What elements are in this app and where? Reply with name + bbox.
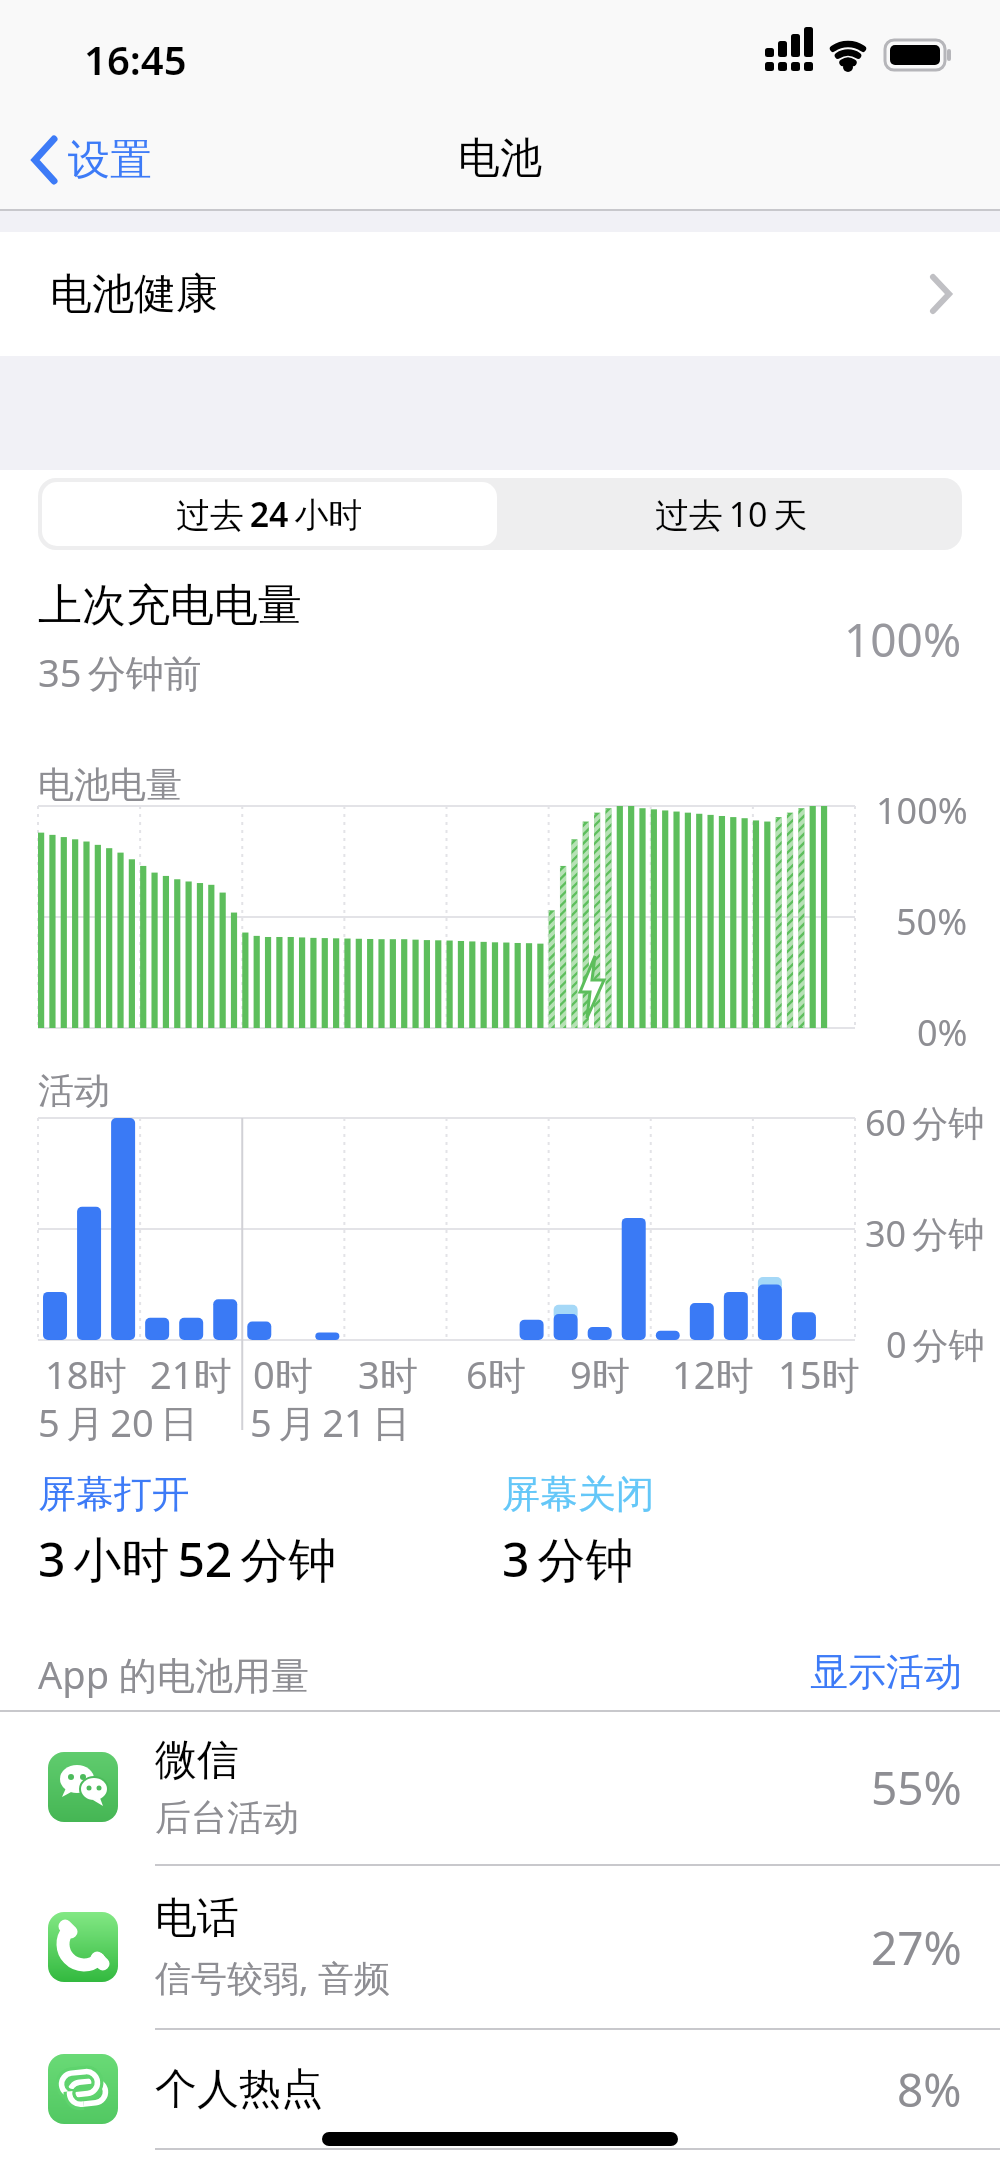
button[interactable]: 电池健康 xyxy=(0,232,1000,356)
staticText: 设置 xyxy=(68,134,152,187)
staticText: 100% xyxy=(844,608,962,671)
staticText: 35 分钟前 xyxy=(38,646,202,698)
staticText: 50% xyxy=(896,897,968,946)
staticText: 显示活动 xyxy=(810,1648,962,1696)
staticText: 信号较弱, 音频 xyxy=(155,1953,391,2002)
button[interactable]: 个人热点 xyxy=(0,2030,1000,2148)
staticText: 电池电量 xyxy=(38,762,182,807)
staticText: 电池健康 xyxy=(50,268,218,321)
button[interactable]: 电话 xyxy=(0,1866,1000,2028)
staticText: 过去 10 天 xyxy=(655,491,808,537)
staticText: 3时 xyxy=(358,1348,418,1400)
button[interactable]: 显示活动 xyxy=(810,1648,962,1696)
staticText: 3 小时 52 分钟 xyxy=(38,1526,337,1592)
staticText: 微信 xyxy=(155,1734,239,1787)
staticText: 5 月 21 日 xyxy=(250,1396,411,1448)
staticText: 0 分钟 xyxy=(886,1320,985,1369)
staticText: 12时 xyxy=(672,1348,754,1400)
staticText: 18时 xyxy=(45,1348,127,1400)
staticText: 电话 xyxy=(155,1892,239,1945)
staticText: 55% xyxy=(871,1756,962,1819)
staticText: 9时 xyxy=(570,1348,630,1400)
staticText: 电池 xyxy=(458,132,542,185)
staticText: 21时 xyxy=(150,1348,232,1400)
staticText: 上次充电电量 xyxy=(38,578,302,633)
staticText: 8% xyxy=(897,2058,962,2121)
button[interactable]: 过去 24 小时 xyxy=(42,482,497,546)
button[interactable]: 设置 xyxy=(28,130,152,190)
staticText: 活动 xyxy=(38,1068,110,1113)
staticText: 过去 24 小时 xyxy=(176,491,363,537)
staticText: 60 分钟 xyxy=(865,1098,985,1147)
staticText: 0时 xyxy=(253,1348,313,1400)
staticText: 3 分钟 xyxy=(502,1526,634,1592)
staticText: 27% xyxy=(871,1916,962,1979)
staticText: 100% xyxy=(876,786,968,835)
staticText: 6时 xyxy=(466,1348,526,1400)
staticText: App 的电池用量 xyxy=(38,1648,309,1700)
button[interactable]: 过去 10 天 xyxy=(501,478,962,550)
staticText: 0% xyxy=(917,1008,968,1057)
staticText: 个人热点 xyxy=(155,2063,323,2116)
staticText: 5 月 20 日 xyxy=(38,1396,199,1448)
staticText: 后台活动 xyxy=(155,1795,299,1840)
staticText: 30 分钟 xyxy=(865,1209,985,1258)
staticText: 15时 xyxy=(778,1348,860,1400)
staticText: 屏幕关闭 xyxy=(502,1470,654,1518)
staticText: 16:45 xyxy=(84,32,187,86)
button[interactable]: 微信 xyxy=(0,1710,1000,1864)
staticText: 屏幕打开 xyxy=(38,1470,190,1518)
